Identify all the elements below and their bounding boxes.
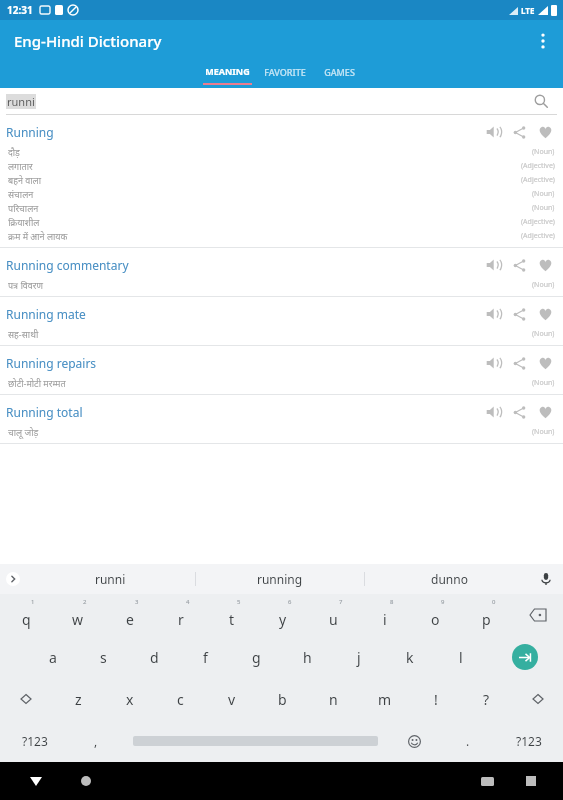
button[interactable]: dunno	[365, 564, 533, 594]
staticText: चालू जोड़	[8, 426, 532, 438]
button[interactable]: j	[333, 636, 384, 678]
button[interactable]: Period	[441, 720, 494, 762]
button[interactable]: n	[308, 678, 359, 720]
button[interactable]: Pronounce	[481, 302, 505, 326]
button[interactable]: Space	[122, 720, 388, 762]
button[interactable]: Search	[529, 89, 553, 113]
staticText: GAMES	[324, 66, 355, 78]
button[interactable]: Shift	[0, 678, 52, 720]
button[interactable]: Pronounce	[481, 120, 505, 144]
button[interactable]: Enter	[486, 636, 563, 678]
staticText: (Adjective)	[521, 175, 555, 185]
button[interactable]: runni	[26, 564, 195, 594]
staticText: छोटी-मोटी मरम्मत	[8, 377, 532, 389]
button[interactable]: Running mate	[0, 297, 563, 345]
button[interactable]: Keyboard	[473, 767, 501, 795]
button[interactable]: 7	[308, 594, 359, 636]
staticText: (Noun)	[532, 329, 555, 339]
button[interactable]: Pronounce	[481, 400, 505, 424]
button[interactable]: l	[435, 636, 486, 678]
button[interactable]: Voice input	[535, 568, 557, 590]
button[interactable]: FAVORITE	[256, 62, 313, 88]
button[interactable]: More options	[523, 21, 563, 61]
button[interactable]: 9	[410, 594, 461, 636]
staticText: बहने वाला	[8, 174, 521, 186]
button[interactable]: z	[52, 678, 104, 720]
button[interactable]: f	[180, 636, 231, 678]
staticText: !	[434, 690, 438, 709]
button[interactable]: 8	[359, 594, 410, 636]
button[interactable]: 3	[104, 594, 155, 636]
button[interactable]: Share	[507, 302, 531, 326]
button[interactable]: GAMES	[313, 62, 365, 88]
staticText: सह-साथी	[8, 328, 532, 340]
button[interactable]: Share	[507, 351, 531, 375]
staticText: r	[178, 610, 184, 629]
button[interactable]: 6	[257, 594, 308, 636]
button[interactable]: ?123	[494, 720, 563, 762]
button[interactable]: Shift	[512, 678, 563, 720]
staticText: Running commentary	[6, 257, 481, 273]
button[interactable]: !	[410, 678, 461, 720]
button[interactable]: Share	[507, 120, 531, 144]
button[interactable]: Favorite	[533, 253, 557, 277]
button[interactable]: Favorite	[533, 302, 557, 326]
button[interactable]: 1	[0, 594, 52, 636]
button[interactable]: Favorite	[533, 400, 557, 424]
button[interactable]: a	[27, 636, 78, 678]
staticText: LTE	[521, 5, 535, 16]
button[interactable]: ?123	[0, 720, 69, 762]
staticText: w	[72, 610, 84, 629]
button[interactable]: ?	[461, 678, 512, 720]
button[interactable]: c	[155, 678, 206, 720]
button[interactable]: s	[78, 636, 129, 678]
staticText: dunno	[431, 571, 468, 587]
button[interactable]: 0	[461, 594, 512, 636]
button[interactable]: running	[196, 564, 364, 594]
button[interactable]: Backspace	[512, 594, 563, 636]
staticText: runni	[7, 94, 35, 109]
button[interactable]: Expand suggestions	[2, 568, 24, 590]
button[interactable]: Recent apps	[517, 767, 545, 795]
staticText: runni	[95, 571, 126, 587]
button[interactable]: d	[129, 636, 180, 678]
button[interactable]: Favorite	[533, 120, 557, 144]
button[interactable]: b	[257, 678, 308, 720]
button[interactable]: x	[104, 678, 155, 720]
button[interactable]: Running total	[0, 395, 563, 443]
staticText: c	[177, 690, 184, 709]
button[interactable]: Emoji	[388, 720, 441, 762]
button[interactable]: v	[206, 678, 257, 720]
button[interactable]: Back	[22, 767, 50, 795]
button[interactable]: 4	[155, 594, 206, 636]
staticText: .	[466, 733, 470, 749]
button[interactable]: m	[359, 678, 410, 720]
button[interactable]: Running repairs	[0, 346, 563, 394]
staticText: l	[459, 648, 463, 667]
button[interactable]: Running	[0, 115, 563, 247]
button[interactable]: g	[231, 636, 282, 678]
button[interactable]: 2	[52, 594, 104, 636]
staticText: s	[100, 648, 107, 667]
staticText: पत्र विवरण	[8, 279, 532, 291]
button[interactable]: Comma	[69, 720, 122, 762]
button[interactable]: Home	[72, 767, 100, 795]
button[interactable]: Pronounce	[481, 253, 505, 277]
button[interactable]: MEANING	[198, 62, 256, 88]
staticText: h	[303, 648, 312, 667]
button[interactable]: Running commentary	[0, 248, 563, 296]
button[interactable]: Share	[507, 253, 531, 277]
button[interactable]: 5	[206, 594, 257, 636]
button[interactable]: Share	[507, 400, 531, 424]
staticText: Running total	[6, 404, 481, 420]
button[interactable]: k	[384, 636, 435, 678]
staticText: y	[279, 610, 287, 629]
staticText: t	[229, 610, 235, 629]
button[interactable]: h	[282, 636, 333, 678]
staticText: Eng-Hindi Dictionary	[14, 31, 162, 51]
staticText: 1	[31, 598, 35, 606]
button[interactable]: Pronounce	[481, 351, 505, 375]
staticText: 2	[83, 598, 87, 606]
staticText: (Noun)	[532, 378, 555, 388]
button[interactable]: Favorite	[533, 351, 557, 375]
